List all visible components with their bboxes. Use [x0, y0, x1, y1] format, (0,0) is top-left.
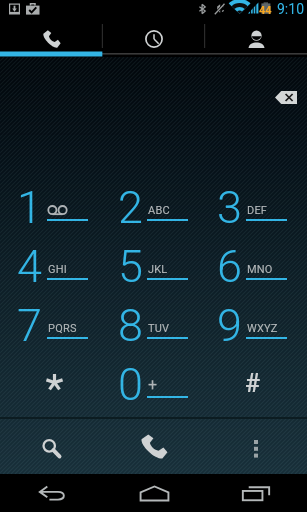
staticText: 1	[17, 181, 40, 234]
staticText: DEF	[247, 204, 268, 217]
staticText: #	[245, 369, 261, 398]
button[interactable]: 2	[100, 172, 200, 231]
button[interactable]: 5	[100, 231, 200, 290]
staticText: 9:10	[277, 1, 304, 17]
staticText: 3	[217, 181, 240, 234]
button[interactable]: 1	[0, 172, 100, 231]
staticText: JKL	[148, 263, 168, 276]
button[interactable]: pound	[199, 352, 299, 411]
staticText: 7	[17, 299, 40, 352]
button[interactable]: 4	[0, 231, 100, 290]
button[interactable]: 3	[199, 172, 299, 231]
button[interactable]: Home	[103, 474, 205, 512]
staticText: PQRS	[48, 322, 77, 335]
button[interactable]: 6	[199, 231, 299, 290]
staticText: 2	[118, 181, 141, 234]
staticText: ABC	[148, 204, 170, 217]
button[interactable]: 7	[0, 290, 100, 349]
button[interactable]: Search	[0, 418, 103, 474]
button[interactable]: 9	[199, 290, 299, 349]
staticText: 5	[118, 240, 141, 293]
button[interactable]: 8	[100, 290, 200, 349]
staticText: 6	[217, 240, 240, 293]
staticText: +	[148, 375, 158, 394]
button[interactable]: Recents	[205, 474, 307, 512]
button[interactable]: Contacts	[205, 18, 307, 60]
button[interactable]: Call	[103, 418, 205, 474]
button[interactable]: More options	[205, 418, 307, 474]
button[interactable]: 0	[100, 349, 200, 408]
button[interactable]: Back	[0, 474, 103, 512]
staticText: 4	[17, 240, 40, 293]
staticText: TUV	[148, 322, 170, 335]
staticText: WXYZ	[247, 322, 278, 335]
staticText: 44	[259, 4, 272, 17]
staticText: GHI	[48, 263, 67, 276]
button[interactable]: Call log	[103, 18, 205, 60]
button[interactable]: Backspace	[268, 84, 304, 110]
button[interactable]: star	[0, 352, 100, 411]
staticText: 0	[118, 358, 141, 411]
staticText: 9	[217, 299, 240, 352]
button[interactable]: Dialer	[0, 18, 103, 60]
staticText: 8	[118, 299, 141, 352]
staticText: MNO	[247, 263, 273, 276]
